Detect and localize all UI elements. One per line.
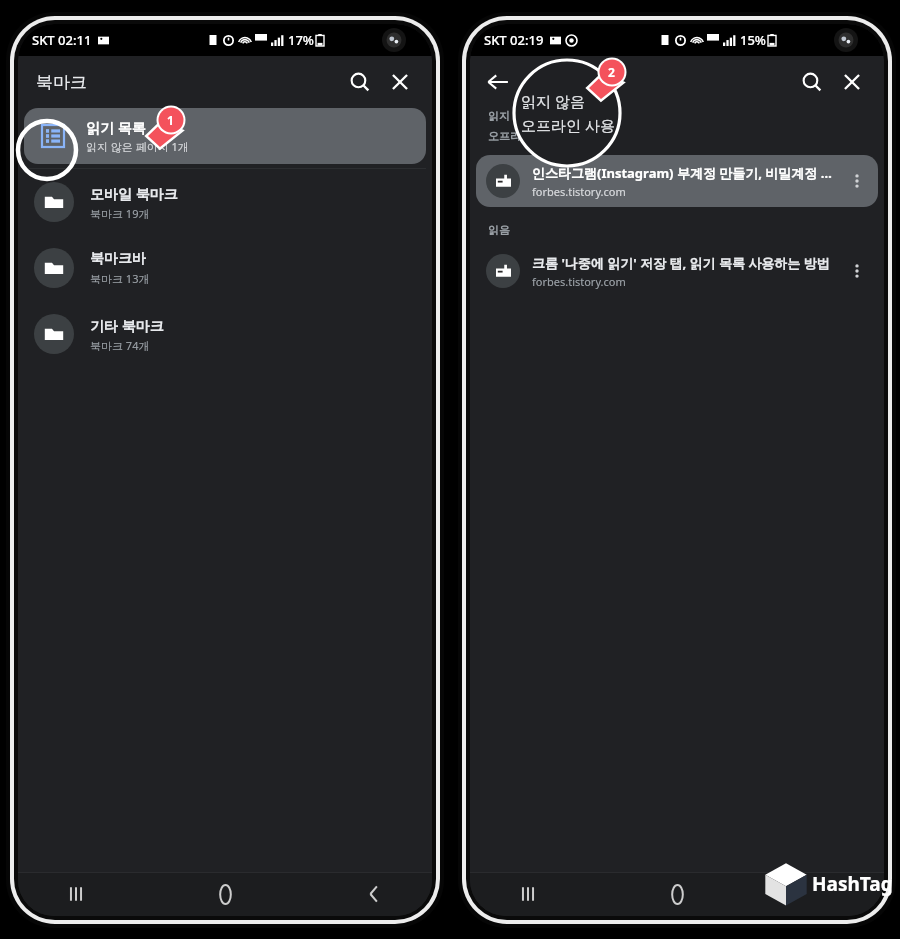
staticText: 북마크 19개	[90, 206, 150, 221]
button[interactable]: Home	[657, 874, 697, 914]
staticText: 17%	[288, 31, 314, 49]
staticText: 1	[167, 112, 174, 128]
button[interactable]: Back	[354, 874, 394, 914]
staticText: SKT 02:11	[32, 31, 92, 49]
staticText: 읽지 않음	[521, 91, 585, 111]
button[interactable]: Back	[478, 62, 518, 102]
staticText: 읽음	[488, 223, 510, 237]
button[interactable]: Close	[380, 62, 420, 102]
button[interactable]: 크롬 '나중에 읽기' 저장 탭, 읽기 목록 사용하는 방법	[476, 245, 878, 297]
button[interactable]: 기타 북마크	[18, 301, 432, 367]
button[interactable]: More options	[840, 164, 874, 198]
button[interactable]: 모바일 북마크	[18, 169, 432, 235]
button[interactable]: Recents	[508, 874, 548, 914]
button[interactable]: Search	[340, 62, 380, 102]
staticText: 기타 북마크	[90, 316, 164, 335]
staticText: HashTag	[812, 871, 893, 897]
staticText: 북마크	[36, 72, 87, 93]
button[interactable]: More options	[840, 254, 874, 288]
staticText: 크롬 '나중에 읽기' 저장 탭, 읽기 목록 사용하는 방법	[532, 254, 830, 272]
staticText: 인스타그램(Instagram) 부계정 만들기, 비밀계정 생…	[532, 164, 840, 182]
staticText: SKT 02:19	[484, 31, 544, 49]
staticText: 읽지 않은 페이지 1개	[86, 139, 189, 154]
button[interactable]: Search	[792, 62, 832, 102]
staticText: 읽지 않음	[488, 108, 535, 123]
staticText: 오프라인 사용	[521, 115, 615, 135]
staticText: forbes.tistory.com	[532, 274, 626, 289]
staticText: 모바일 북마크	[90, 184, 178, 203]
staticText: 읽기 목록	[86, 118, 146, 137]
staticText: 오프라인 사용	[488, 128, 557, 143]
staticText: 북마크바	[90, 250, 146, 268]
staticText: 2	[608, 64, 615, 80]
button[interactable]: Home	[205, 874, 245, 914]
button[interactable]: 인스타그램(Instagram) 부계정 만들기, 비밀계정 생…	[476, 155, 878, 207]
staticText: 북마크 74개	[90, 338, 150, 353]
staticText: forbes.tistory.com	[532, 184, 626, 199]
button[interactable]: Recents	[56, 874, 96, 914]
staticText: 15%	[740, 31, 766, 49]
button[interactable]: Back	[806, 874, 846, 914]
button[interactable]: 읽기 목록	[24, 108, 426, 164]
button[interactable]: 북마크바	[18, 235, 432, 301]
staticText: 북마크 13개	[90, 271, 150, 286]
button[interactable]: Close	[832, 62, 872, 102]
